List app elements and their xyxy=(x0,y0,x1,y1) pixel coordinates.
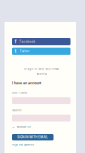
button[interactable]: SIGN IN WITH EMAIL xyxy=(12,134,53,140)
button[interactable]: Forgot your password? xyxy=(12,143,34,146)
staticText: ✓ xyxy=(12,125,15,129)
staticText: Forgot your password? xyxy=(12,143,34,146)
staticText: Password xyxy=(12,109,21,112)
staticText: SIGN IN WITH EMAIL xyxy=(17,135,48,139)
button[interactable]: f xyxy=(12,38,70,45)
staticText: Facebook xyxy=(19,40,35,43)
staticText: Twitter xyxy=(19,49,29,53)
button[interactable]: t xyxy=(12,48,70,55)
staticText: Or sign in with your email address xyxy=(23,67,59,76)
staticText: Remember me xyxy=(16,126,30,129)
staticText: t xyxy=(15,49,17,54)
staticText: f xyxy=(15,39,17,44)
staticText: Email Address xyxy=(12,91,27,94)
staticText: I have an account xyxy=(12,81,41,85)
